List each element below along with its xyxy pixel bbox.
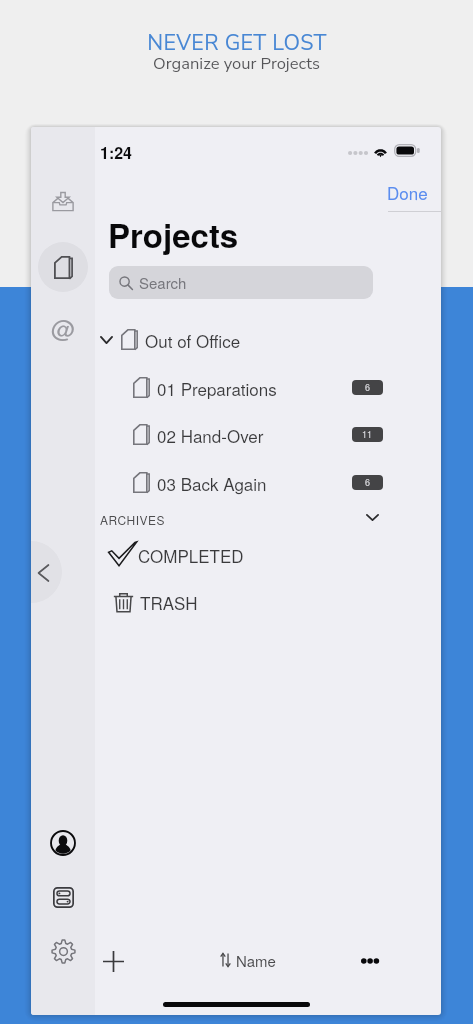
button[interactable]: Search [109,266,373,299]
button[interactable]: Projects [38,242,88,292]
button[interactable]: More [352,943,388,979]
button[interactable]: Settings [45,933,81,969]
button[interactable]: Name [216,946,280,974]
staticText: 6 [365,476,371,489]
button[interactable]: COMPLETED [95,532,441,578]
staticText: 03 Back Again [157,471,267,495]
button[interactable]: Account [45,825,81,861]
button[interactable]: 02 Hand-Over [95,411,441,458]
button[interactable]: Back [31,541,62,603]
button[interactable]: 03 Back Again [95,459,441,506]
staticText: 6 [365,381,371,394]
staticText: 02 Hand-Over [157,423,264,447]
button[interactable]: Add [95,943,132,980]
button[interactable]: Out of Office [95,317,441,363]
button[interactable]: Options [45,879,81,915]
staticText: 11 [362,428,373,441]
button[interactable]: Mentions [47,310,79,342]
staticText: Done [387,180,428,204]
button[interactable]: TRASH [95,579,441,625]
staticText: COMPLETED [138,543,244,567]
button[interactable]: Done [379,177,435,207]
button[interactable]: 01 Preparations [95,364,441,411]
staticText: Out of Office [145,328,241,352]
staticText: NEVER GET LOST [147,28,327,57]
button[interactable]: ARCHIVES [95,504,441,532]
button[interactable]: Inbox [45,183,81,219]
staticText: Name [236,950,276,971]
staticText: ARCHIVES [100,511,166,528]
staticText: Projects [108,211,239,258]
staticText: @ [51,310,76,342]
staticText: 1:24 [100,141,133,163]
staticText: Search [139,272,187,293]
staticText: 01 Preparations [157,376,277,400]
staticText: Organize your Projects [153,52,320,75]
staticText: TRASH [140,590,198,614]
